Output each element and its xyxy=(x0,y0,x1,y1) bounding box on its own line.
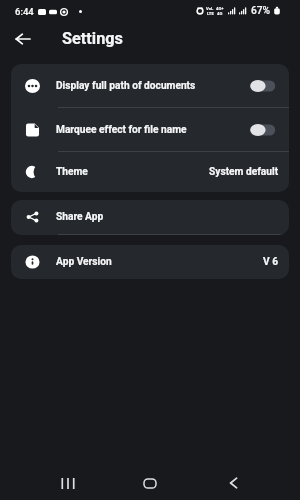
button[interactable]: Theme xyxy=(11,152,289,192)
staticText: Display full path of documents xyxy=(56,80,196,92)
button[interactable] xyxy=(251,119,289,141)
button[interactable] xyxy=(251,75,289,97)
staticText: 6:44 xyxy=(15,6,34,17)
button[interactable]: Back xyxy=(9,25,37,53)
button[interactable]: Marquee effect for file name xyxy=(11,108,289,151)
staticText: LTE xyxy=(207,11,214,16)
button[interactable]: Back xyxy=(218,468,248,498)
button[interactable]: Display full path of documents xyxy=(11,64,289,107)
staticText: V 6 xyxy=(263,256,279,268)
staticText: 67% xyxy=(251,5,271,17)
button[interactable]: App Version xyxy=(11,245,289,279)
staticText: Marquee effect for file name xyxy=(56,124,187,136)
button[interactable]: Home xyxy=(135,468,165,498)
staticText: VoL xyxy=(206,6,214,11)
staticText: Settings xyxy=(62,29,123,48)
button[interactable]: Share App xyxy=(11,200,289,234)
button[interactable]: Recent apps xyxy=(53,468,83,498)
staticText: Theme xyxy=(56,166,88,178)
staticText: System default xyxy=(209,166,279,178)
staticText: Share App xyxy=(56,211,104,223)
staticText: 4G+ xyxy=(216,6,224,11)
staticText: App Version xyxy=(56,256,112,268)
staticText: 4G xyxy=(217,11,223,16)
